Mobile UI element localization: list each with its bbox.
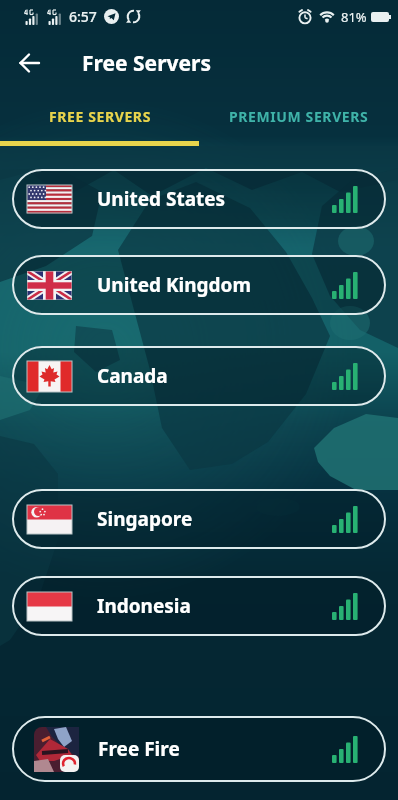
staticText: FREE SERVERS [49, 107, 151, 126]
staticText: Singapore [97, 506, 193, 532]
button[interactable]: PREMIUM SERVERS [199, 93, 398, 146]
staticText: United Kingdom [97, 272, 251, 298]
button[interactable]: FREE SERVERS [0, 93, 199, 146]
button[interactable]: Canada [12, 346, 386, 406]
staticText: United States [97, 186, 226, 212]
staticText: Canada [97, 363, 168, 389]
button[interactable]: United Kingdom [12, 255, 386, 315]
staticText: PREMIUM SERVERS [229, 107, 369, 126]
staticText: Indonesia [97, 593, 191, 619]
button[interactable]: United States [12, 169, 386, 229]
staticText: Free Fire [98, 736, 180, 762]
button[interactable]: Singapore [12, 489, 386, 549]
button[interactable]: Free Fire [12, 716, 386, 782]
button[interactable]: Indonesia [12, 576, 386, 636]
staticText: 81% [341, 8, 367, 26]
staticText: Free Servers [82, 49, 211, 78]
staticText: 6:57 [69, 7, 97, 26]
button[interactable] [0, 33, 60, 93]
